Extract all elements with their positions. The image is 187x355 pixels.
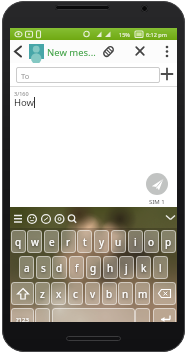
- staticText: j: [125, 261, 128, 275]
- button[interactable]: o: [144, 230, 159, 253]
- staticText: e: [49, 235, 55, 249]
- button[interactable]: i: [128, 230, 143, 253]
- button[interactable]: u: [111, 230, 126, 253]
- button[interactable]: s: [36, 256, 51, 279]
- staticText: How: [14, 96, 35, 109]
- button[interactable]: h: [103, 256, 118, 279]
- button[interactable]: [160, 67, 174, 81]
- button[interactable]: t: [77, 230, 92, 253]
- staticText: i: [134, 235, 137, 249]
- staticText: c: [73, 287, 78, 301]
- button[interactable]: [29, 44, 44, 59]
- button[interactable]: ?123: [11, 308, 34, 322]
- button[interactable]: .: [135, 308, 150, 322]
- button[interactable]: n: [118, 282, 133, 305]
- staticText: o: [148, 235, 155, 249]
- button[interactable]: [13, 45, 23, 58]
- button[interactable]: [11, 282, 34, 305]
- button[interactable]: f: [69, 256, 84, 279]
- staticText: New mes...: [47, 46, 96, 59]
- button[interactable]: v: [85, 282, 100, 305]
- button[interactable]: [146, 173, 168, 195]
- staticText: t: [83, 235, 87, 249]
- button[interactable]: To: [16, 67, 160, 83]
- button[interactable]: p: [161, 230, 176, 253]
- staticText: SIM 1: [149, 198, 165, 206]
- staticText: To: [21, 71, 30, 81]
- button[interactable]: m: [135, 282, 150, 305]
- staticText: m: [138, 287, 148, 301]
- staticText: ?123: [16, 316, 29, 322]
- staticText: q: [15, 235, 22, 249]
- staticText: g: [90, 261, 97, 275]
- button[interactable]: y: [94, 230, 109, 253]
- button[interactable]: l: [153, 256, 168, 279]
- staticText: r: [66, 235, 71, 249]
- button[interactable]: w: [27, 230, 42, 253]
- staticText: b: [106, 287, 113, 301]
- staticText: 6:12 pm: [146, 31, 167, 38]
- button[interactable]: q: [11, 230, 26, 253]
- button[interactable]: g: [86, 256, 101, 279]
- button[interactable]: r: [61, 230, 76, 253]
- staticText: x: [56, 287, 62, 301]
- button[interactable]: e: [44, 230, 59, 253]
- staticText: d: [56, 261, 63, 275]
- staticText: w: [31, 235, 39, 249]
- staticText: v: [90, 287, 96, 301]
- staticText: 3/160: [14, 90, 29, 97]
- staticText: 15%: [119, 31, 130, 38]
- button[interactable]: [101, 44, 116, 59]
- button[interactable]: [163, 44, 171, 59]
- button[interactable]: [153, 308, 176, 322]
- staticText: p: [165, 235, 172, 249]
- button[interactable]: z: [35, 282, 50, 305]
- button[interactable]: [153, 282, 176, 305]
- staticText: k: [141, 261, 147, 275]
- staticText: f: [75, 261, 79, 275]
- button[interactable]: b: [102, 282, 117, 305]
- staticText: l: [159, 261, 162, 275]
- staticText: s: [41, 261, 46, 275]
- button[interactable]: [135, 46, 145, 56]
- staticText: y: [99, 235, 105, 249]
- staticText: n: [122, 287, 129, 301]
- button[interactable]: j: [119, 256, 134, 279]
- button[interactable]: d: [52, 256, 67, 279]
- staticText: z: [40, 287, 45, 301]
- staticText: h: [107, 261, 114, 275]
- staticText: u: [115, 235, 122, 249]
- button[interactable]: x: [51, 282, 66, 305]
- button[interactable]: ,: [35, 308, 50, 322]
- button[interactable]: a: [19, 256, 34, 279]
- button[interactable]: [52, 308, 135, 322]
- button[interactable]: k: [136, 256, 151, 279]
- staticText: a: [24, 261, 30, 275]
- button[interactable]: c: [68, 282, 83, 305]
